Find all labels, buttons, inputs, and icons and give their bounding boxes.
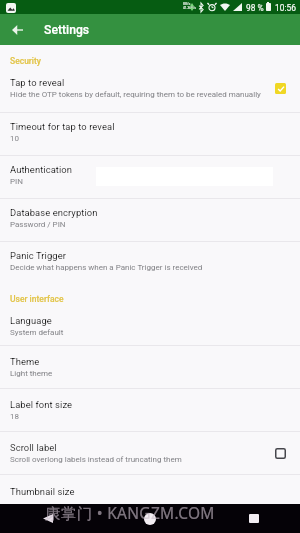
button[interactable]: Timeout for tap to reveal (0, 113, 300, 155)
staticText: Label font size (10, 399, 73, 410)
button[interactable]: Scroll label (0, 432, 300, 474)
staticText: User interface (10, 294, 64, 304)
staticText: Hide the OTP tokens by default, requirin… (10, 90, 261, 99)
staticText: Language (10, 315, 52, 326)
staticText: 18 (10, 412, 19, 421)
button[interactable]: Language (0, 303, 300, 345)
staticText: Security (10, 56, 42, 66)
staticText: Light theme (10, 369, 53, 378)
button[interactable]: Recent apps (200, 504, 300, 533)
staticText: Settings (44, 23, 90, 37)
button[interactable]: Tap to reveal (0, 70, 300, 112)
staticText: Password / PIN (10, 220, 66, 229)
staticText: Timeout for tap to reveal (10, 121, 115, 132)
staticText: 41.36B/s (183, 6, 196, 10)
button[interactable]: Back (0, 504, 100, 533)
button[interactable]: Authentication (0, 156, 300, 198)
staticText: 98 % (246, 3, 264, 13)
button[interactable]: Panic Trigger (0, 242, 300, 284)
staticText: Thumbnail size (10, 486, 75, 497)
button[interactable]: Disabled (275, 448, 286, 459)
button[interactable]: Theme (0, 346, 300, 388)
button[interactable]: Thumbnail size (0, 475, 300, 504)
staticText: Tap to reveal (10, 77, 65, 88)
staticText: 10:56 (275, 3, 296, 13)
staticText: Panic Trigger (10, 250, 66, 261)
staticText: 康掌门 • KANGZM.COM (45, 502, 215, 523)
staticText: System default (10, 328, 64, 337)
staticText: PIN (10, 177, 23, 186)
button[interactable]: Enabled (275, 83, 286, 94)
staticText: Scroll label (10, 442, 57, 453)
button[interactable]: Navigate up (6, 19, 28, 41)
staticText: Authentication (10, 164, 73, 175)
staticText: Database encryption (10, 207, 98, 218)
staticText: 88/s (183, 2, 191, 6)
staticText: Scroll overlong labels instead of trunca… (10, 455, 182, 464)
button[interactable]: Label font size (0, 389, 300, 431)
staticText: Decide what happens when a Panic Trigger… (10, 263, 203, 272)
staticText: Theme (10, 356, 40, 367)
button[interactable]: Home (100, 504, 200, 533)
button[interactable]: Database encryption (0, 199, 300, 241)
staticText: 10 (10, 134, 19, 143)
